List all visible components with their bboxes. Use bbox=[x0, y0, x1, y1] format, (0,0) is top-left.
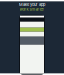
staticText: work smarter bbox=[19, 7, 44, 12]
staticText: Make your app bbox=[19, 2, 45, 7]
